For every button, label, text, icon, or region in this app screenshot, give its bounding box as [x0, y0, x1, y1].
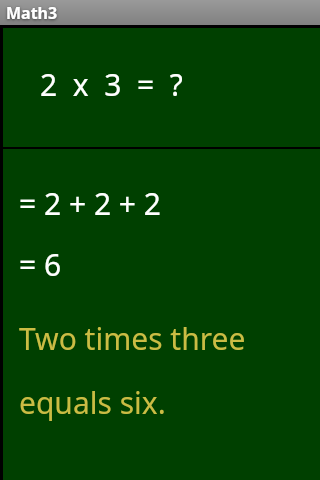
- staticText: = 6: [19, 244, 62, 285]
- button[interactable]: 2 x 3 = ?: [3, 28, 320, 147]
- staticText: equals six.: [19, 382, 166, 423]
- staticText: = 2 + 2 + 2: [19, 183, 161, 224]
- button[interactable]: = 2 + 2 + 2: [3, 149, 320, 480]
- staticText: Two times three: [19, 318, 246, 359]
- staticText: Math3: [6, 2, 58, 24]
- button[interactable]: Math3: [0, 0, 320, 25]
- staticText: 2 x 3 = ?: [40, 64, 183, 105]
